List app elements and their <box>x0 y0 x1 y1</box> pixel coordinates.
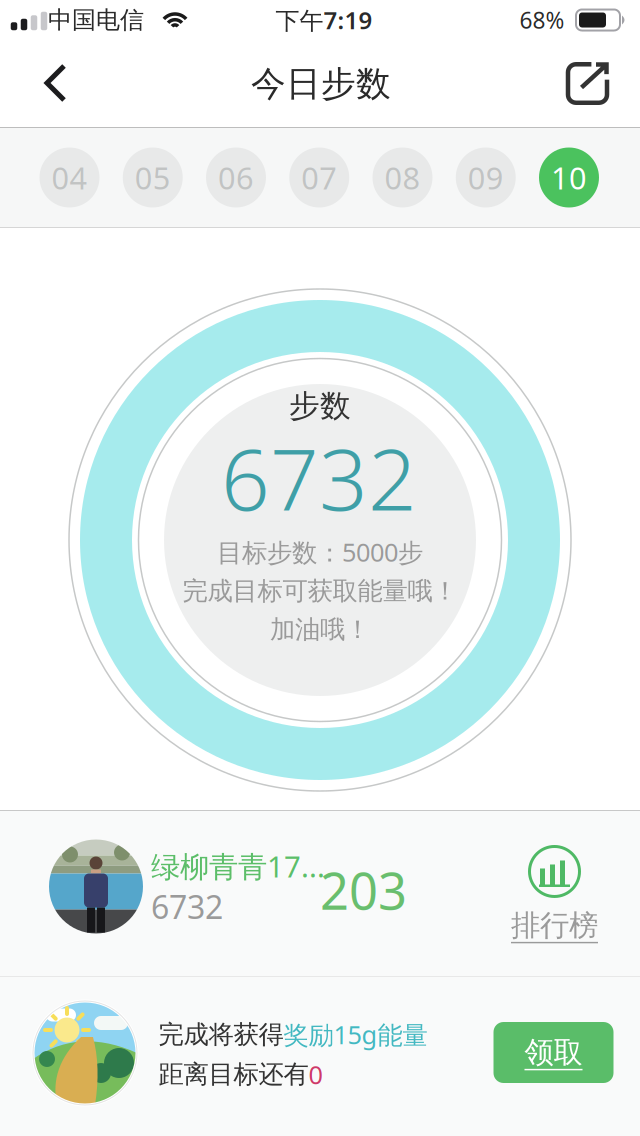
staticText: 68% <box>519 5 564 35</box>
button[interactable]: 04 <box>39 147 99 207</box>
staticText: 6732 <box>151 885 223 928</box>
staticText: 下午7:19 <box>275 4 372 36</box>
button[interactable]: 07 <box>289 147 349 207</box>
button[interactable]: Share <box>552 48 623 119</box>
staticText: 完成目标可获取能量哦！ <box>182 575 457 606</box>
button[interactable]: 05 <box>123 147 183 207</box>
staticText: 05 <box>135 157 171 198</box>
staticText: 奖励15g能量 <box>284 1018 428 1051</box>
staticText: 203 <box>320 856 407 924</box>
staticText: 07 <box>301 157 337 198</box>
staticText: 10 <box>551 157 587 198</box>
button[interactable]: 09 <box>456 147 516 207</box>
staticText: 0 <box>309 1058 323 1091</box>
staticText: 中国电信 <box>48 5 144 35</box>
button[interactable]: 排行榜 <box>501 836 608 953</box>
staticText: 排行榜 <box>511 907 598 943</box>
staticText: 今日步数 <box>251 63 391 105</box>
button[interactable]: 08 <box>372 147 432 207</box>
staticText: 目标步数：5000步 <box>217 535 423 569</box>
staticText: 04 <box>51 157 87 198</box>
staticText: 08 <box>384 157 420 198</box>
staticText: 加油哦！ <box>270 614 370 645</box>
button[interactable]: 领取 <box>493 1022 613 1083</box>
staticText: 完成将获得 <box>159 1019 284 1050</box>
staticText: 距离目标还有 <box>159 1059 309 1090</box>
button[interactable]: 10 <box>539 147 599 207</box>
staticText: 步数 <box>289 387 351 425</box>
button[interactable]: 06 <box>206 147 266 207</box>
staticText: 领取 <box>524 1034 582 1070</box>
staticText: 6732 <box>221 421 417 534</box>
staticText: 绿柳青青17.... <box>151 846 333 885</box>
button[interactable]: Back <box>23 46 88 120</box>
staticText: 09 <box>468 157 504 198</box>
staticText: 06 <box>218 157 254 198</box>
